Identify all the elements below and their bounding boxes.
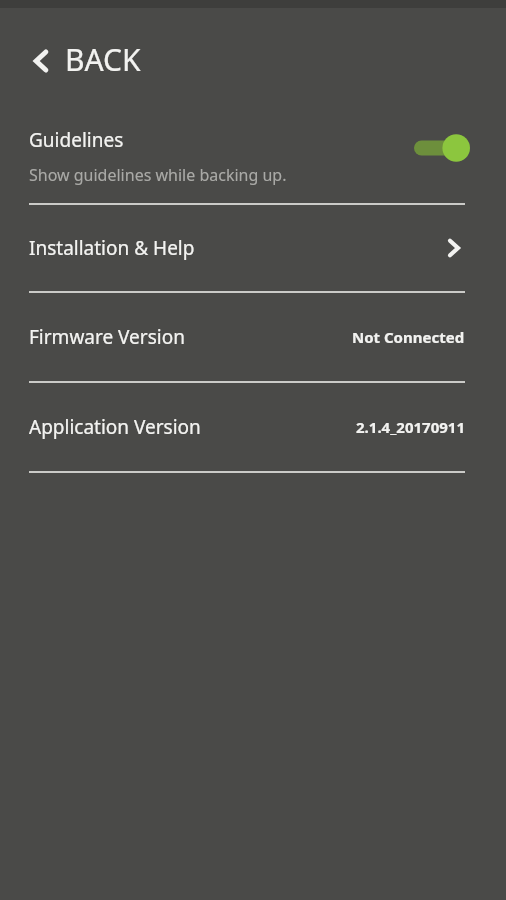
button[interactable]: Guidelines — [0, 110, 506, 203]
button[interactable]: Application Version — [0, 383, 506, 471]
staticText: BACK — [65, 39, 141, 80]
staticText: Show guidelines while backing up. — [29, 164, 287, 186]
staticText: Application Version — [29, 414, 201, 440]
staticText: Guidelines — [29, 127, 124, 153]
button[interactable]: Firmware Version — [0, 293, 506, 381]
staticText: Installation & Help — [29, 235, 195, 261]
staticText: Not Connected — [352, 327, 465, 347]
button[interactable]: BACK — [30, 39, 141, 80]
button[interactable]: Installation & Help — [0, 205, 506, 291]
staticText: Firmware Version — [29, 324, 185, 350]
staticText: 2.1.4_20170911 — [356, 417, 465, 437]
button[interactable]: Guidelines toggle, on — [414, 133, 470, 163]
